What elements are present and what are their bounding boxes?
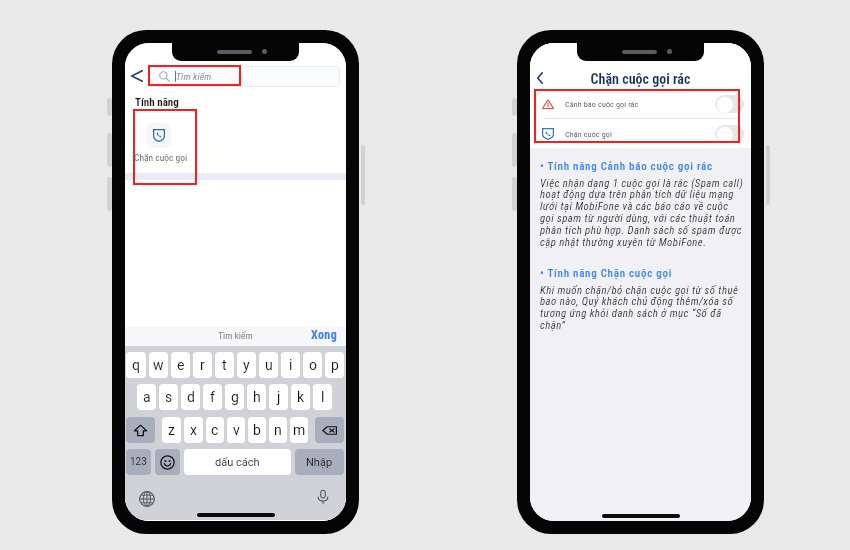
button[interactable]: dấu cách xyxy=(184,449,291,475)
staticText: Tìm kiếm xyxy=(176,71,212,82)
staticText: 123 xyxy=(130,456,147,468)
button[interactable]: k xyxy=(291,384,310,410)
button[interactable]: Xong xyxy=(311,328,338,342)
button[interactable]: x xyxy=(184,417,203,443)
button[interactable]: Tìm kiếm xyxy=(149,66,340,87)
staticText: Nhập xyxy=(306,456,333,469)
button[interactable]: u xyxy=(259,352,278,378)
button[interactable]: e xyxy=(171,352,190,378)
button[interactable]: p xyxy=(325,352,344,378)
button[interactable]: Nhập xyxy=(295,449,344,475)
staticText: • Tính năng Chặn cuộc gọi xyxy=(540,267,673,280)
button[interactable]: l xyxy=(313,384,332,410)
staticText: i xyxy=(289,357,293,373)
button[interactable]: i xyxy=(281,352,300,378)
button[interactable]: Shift xyxy=(126,417,155,443)
button[interactable]: Back xyxy=(131,70,143,82)
staticText: p xyxy=(331,357,339,373)
staticText: Chặn cuộc gọi xyxy=(565,129,612,138)
button[interactable]: Change keyboard xyxy=(139,491,155,507)
staticText: Việc nhận dạng 1 cuộc gọi là rác (Spam c… xyxy=(540,177,744,249)
staticText: s xyxy=(165,389,173,405)
button[interactable]: Backspace xyxy=(315,417,344,443)
staticText: m xyxy=(293,422,306,438)
button[interactable]: b xyxy=(248,417,266,443)
staticText: Xong xyxy=(311,328,338,342)
staticText: h xyxy=(253,389,261,405)
staticText: c xyxy=(211,422,219,438)
button[interactable]: n xyxy=(269,417,287,443)
button[interactable]: Cảnh báo cuộc gọi rác xyxy=(541,89,744,118)
button[interactable]: h xyxy=(247,384,266,410)
staticText: n xyxy=(274,422,282,438)
staticText: w xyxy=(153,357,164,373)
button[interactable]: s xyxy=(159,384,178,410)
button[interactable]: w xyxy=(149,352,168,378)
staticText: l xyxy=(321,389,325,405)
staticText: z xyxy=(168,422,175,438)
staticText: q xyxy=(132,357,140,373)
staticText: Tìm kiếm xyxy=(218,330,253,341)
staticText: u xyxy=(265,357,273,373)
button[interactable] xyxy=(146,123,171,148)
staticText: o xyxy=(309,357,317,373)
button[interactable]: Back xyxy=(537,72,543,84)
staticText: k xyxy=(297,389,305,405)
button[interactable]: y xyxy=(237,352,256,378)
staticText: d xyxy=(187,389,195,405)
button[interactable]: Chặn cuộc gọi xyxy=(541,119,744,148)
staticText: b xyxy=(253,422,261,438)
button[interactable]: r xyxy=(193,352,212,378)
button[interactable]: a xyxy=(137,384,156,410)
staticText: j xyxy=(277,389,281,405)
button[interactable]: t xyxy=(215,352,234,378)
staticText: x xyxy=(190,422,197,438)
button[interactable]: v xyxy=(227,417,245,443)
button[interactable]: f xyxy=(203,384,222,410)
button[interactable]: d xyxy=(181,384,200,410)
staticText: r xyxy=(200,357,205,373)
button[interactable]: c xyxy=(206,417,224,443)
staticText: e xyxy=(177,357,185,373)
button[interactable]: 123 xyxy=(126,449,151,475)
staticText: t xyxy=(222,357,227,373)
staticText: a xyxy=(143,389,151,405)
button[interactable]: z xyxy=(162,417,181,443)
staticText: f xyxy=(210,389,215,405)
staticText: y xyxy=(243,357,250,373)
staticText: Tính năng xyxy=(135,96,179,109)
button[interactable]: Toggle xyxy=(715,125,744,143)
staticText: g xyxy=(231,389,239,405)
staticText: • Tính năng Cảnh báo cuộc gọi rác xyxy=(540,160,713,173)
button[interactable]: q xyxy=(126,352,146,378)
staticText: Chặn cuộc gọi rác xyxy=(530,71,751,87)
button[interactable]: m xyxy=(290,417,308,443)
staticText: Chặn cuộc gọi xyxy=(134,152,188,163)
staticText: Cảnh báo cuộc gọi rác xyxy=(565,99,639,108)
staticText: v xyxy=(233,422,240,438)
button[interactable]: Dictation xyxy=(315,489,331,505)
staticText: dấu cách xyxy=(215,456,260,469)
button[interactable]: Toggle xyxy=(715,95,744,113)
button[interactable]: o xyxy=(303,352,322,378)
button[interactable]: j xyxy=(269,384,288,410)
button[interactable]: g xyxy=(225,384,244,410)
staticText: Khi muốn chặn/bỏ chặn cuộc gọi từ số thu… xyxy=(540,284,739,332)
button[interactable]: Emoji xyxy=(155,449,180,475)
